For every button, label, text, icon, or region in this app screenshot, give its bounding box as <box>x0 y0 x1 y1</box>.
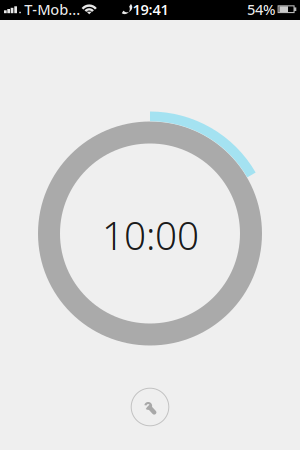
staticText: 19:41 <box>132 0 168 19</box>
staticText: 54% <box>247 0 275 19</box>
staticText: 10:00 <box>102 209 199 261</box>
button[interactable]: 10:00 <box>28 111 272 355</box>
staticText: T-Mob... <box>24 0 80 19</box>
button[interactable]: Settings <box>127 384 173 430</box>
